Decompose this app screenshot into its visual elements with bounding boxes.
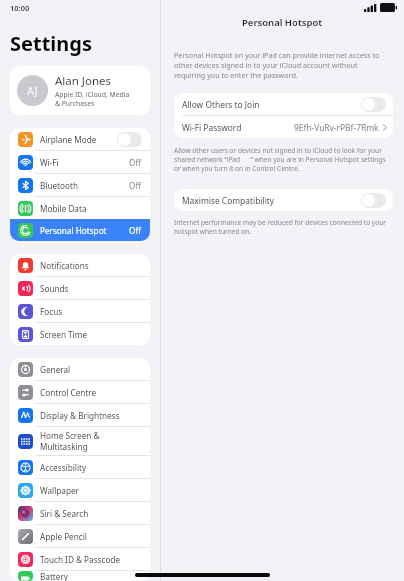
- staticText: Settings: [10, 30, 92, 57]
- staticText: Display & Brightness: [40, 410, 120, 421]
- button[interactable]: Wi-Fi Password: [174, 116, 393, 138]
- button[interactable]: Control Centre: [10, 381, 150, 403]
- button[interactable]: Toggle: [361, 97, 386, 112]
- staticText: Screen Time: [40, 329, 88, 340]
- staticText: Personal Hotspot: [242, 16, 323, 29]
- button[interactable]: Display & Brightness: [10, 404, 150, 426]
- button[interactable]: Focus: [10, 300, 150, 322]
- staticText: Wallpaper: [40, 485, 79, 496]
- button[interactable]: Wallpaper: [10, 479, 150, 501]
- staticText: Wi-Fi: [40, 157, 59, 168]
- button[interactable]: Apple Pencil: [10, 525, 150, 547]
- button[interactable]: Allow Others to Join: [174, 93, 393, 115]
- button[interactable]: Toggle: [117, 132, 142, 147]
- button[interactable]: Notifications: [10, 254, 150, 276]
- staticText: Battery: [40, 571, 69, 581]
- button[interactable]: Bluetooth: [10, 174, 150, 196]
- button[interactable]: Personal Hotspot: [10, 219, 150, 241]
- button[interactable]: Siri & Search: [10, 502, 150, 524]
- button[interactable]: AJ: [10, 66, 150, 115]
- staticText: Bluetooth: [40, 180, 78, 191]
- staticText: Siri & Search: [40, 508, 89, 519]
- staticText: 10:00: [10, 3, 30, 13]
- button[interactable]: Toggle: [361, 193, 386, 208]
- button[interactable]: Accessibility: [10, 456, 150, 478]
- staticText: Allow other users or devices not signed …: [174, 146, 391, 173]
- staticText: Maximise Compatibility: [182, 195, 361, 206]
- button[interactable]: Airplane Mode: [10, 128, 150, 150]
- button[interactable]: Home Screen &: [10, 427, 150, 455]
- staticText: Allow Others to Join: [182, 99, 361, 110]
- staticText: Off: [129, 157, 142, 168]
- staticText: Home Screen &: [40, 430, 100, 441]
- staticText: Notifications: [40, 260, 89, 271]
- button[interactable]: Battery: [10, 571, 150, 581]
- button[interactable]: Touch ID & Passcode: [10, 548, 150, 570]
- staticText: Focus: [40, 306, 63, 317]
- button[interactable]: Maximise Compatibility: [174, 189, 393, 211]
- staticText: Control Centre: [40, 387, 97, 398]
- staticText: Off: [129, 180, 142, 191]
- button[interactable]: Sounds: [10, 277, 150, 299]
- staticText: Personal Hotspot: [40, 225, 107, 236]
- button[interactable]: General: [10, 358, 150, 380]
- staticText: Multitasking: [40, 441, 88, 452]
- staticText: AJ: [27, 83, 38, 98]
- staticText: Mobile Data: [40, 203, 87, 214]
- button[interactable]: Screen Time: [10, 323, 150, 345]
- staticText: Off: [129, 225, 142, 236]
- staticText: Touch ID & Passcode: [40, 554, 121, 565]
- staticText: Sounds: [40, 283, 69, 294]
- staticText: Airplane Mode: [40, 134, 97, 145]
- staticText: Internet performance may be reduced for …: [174, 218, 388, 236]
- staticText: 9Efh-VuRv-rPBf-7Rmk: [294, 122, 379, 133]
- staticText: Alan Jones: [55, 73, 112, 89]
- staticText: General: [40, 364, 71, 375]
- button[interactable]: Wi-Fi: [10, 151, 150, 173]
- staticText: Apple ID, iCloud, Media: [55, 90, 130, 99]
- staticText: & Purchases: [55, 99, 95, 108]
- staticText: Personal Hotspot on your iPad can provid…: [174, 50, 384, 80]
- button[interactable]: Mobile Data: [10, 197, 150, 219]
- staticText: Accessibility: [40, 462, 87, 473]
- staticText: Apple Pencil: [40, 531, 87, 542]
- staticText: Wi-Fi Password: [182, 122, 294, 133]
